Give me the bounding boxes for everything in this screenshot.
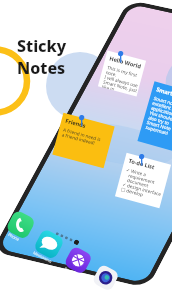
- staticText: Smart Note: [155, 85, 172, 102]
- button[interactable]: Hello World: [98, 50, 146, 97]
- staticText: Camera: [92, 283, 107, 295]
- staticText: Messaging: [33, 250, 53, 263]
- button[interactable]: To-do List: [115, 153, 171, 208]
- staticText: Smart note is an excellent note applicat…: [145, 95, 172, 140]
- staticText: Phone: [7, 232, 21, 242]
- staticText: To-do List: [128, 157, 156, 171]
- staticText: ✓ Write a requirement document ✓ design …: [120, 166, 166, 203]
- staticText: Notes: [17, 57, 66, 79]
- button[interactable]: Messaging: [31, 228, 65, 264]
- staticText: Hello World: [108, 54, 142, 71]
- button[interactable]: Friends: [52, 113, 115, 168]
- button[interactable]: Browser: [61, 245, 93, 280]
- button[interactable]: Phone: [3, 209, 36, 245]
- staticText: A friend in need is a friend indeed!: [61, 126, 102, 148]
- staticText: Browser: [64, 266, 80, 278]
- staticText: Sticky: [17, 35, 67, 57]
- staticText: Friends: [64, 117, 87, 130]
- button[interactable]: Camera: [89, 264, 120, 296]
- staticText: This is my first note. I will always use…: [102, 64, 142, 96]
- button[interactable]: Smart Note: [137, 81, 172, 155]
